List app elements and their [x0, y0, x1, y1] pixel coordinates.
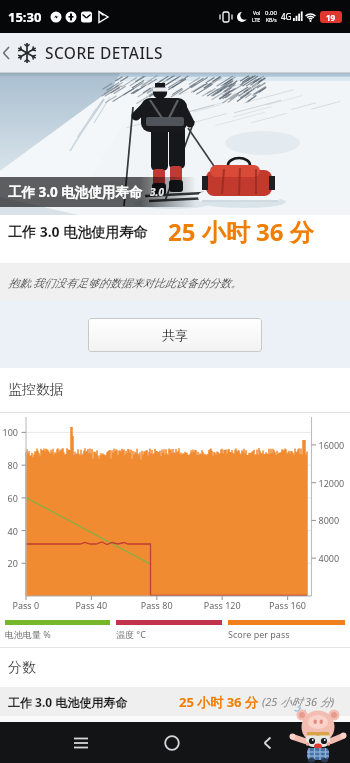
staticText: KB/s: [266, 17, 277, 24]
staticText: 电池电量 %: [5, 628, 51, 640]
staticText: SCORE DETAILS: [45, 42, 163, 63]
staticText: 15:30: [8, 8, 42, 26]
staticText: 0.00: [265, 9, 277, 17]
staticText: 监控数据: [8, 381, 64, 399]
button[interactable]: [61, 722, 101, 763]
staticText: 3.0: [150, 185, 164, 199]
staticText: 19: [326, 12, 336, 23]
staticText: 4G: [281, 11, 292, 22]
staticText: 共享: [162, 327, 188, 343]
staticText: 工作 3.0 电池使用寿命: [8, 222, 148, 241]
button[interactable]: 工作 3.0 电池使用寿命: [8, 687, 342, 716]
staticText: 抱歉,我们没有足够的数据来对比此设备的分数。: [8, 275, 242, 290]
staticText: 25 小时 36 分: [168, 215, 314, 247]
staticText: (25 小时 36 分): [262, 694, 335, 709]
staticText: 工作 3.0 电池使用寿命: [8, 183, 143, 201]
staticText: 25 小时 36 分: [179, 693, 258, 711]
button[interactable]: [248, 722, 288, 763]
staticText: 工作 3.0 电池使用寿命: [8, 694, 128, 710]
button[interactable]: 共享: [88, 318, 262, 352]
button[interactable]: [152, 722, 192, 763]
staticText: Vol: [253, 10, 261, 17]
button[interactable]: SCORE DETAILS: [0, 33, 350, 72]
staticText: 分数: [8, 659, 36, 677]
staticText: LTE: [252, 17, 261, 24]
staticText: Score per pass: [228, 628, 290, 640]
staticText: 温度 °C: [116, 628, 146, 640]
